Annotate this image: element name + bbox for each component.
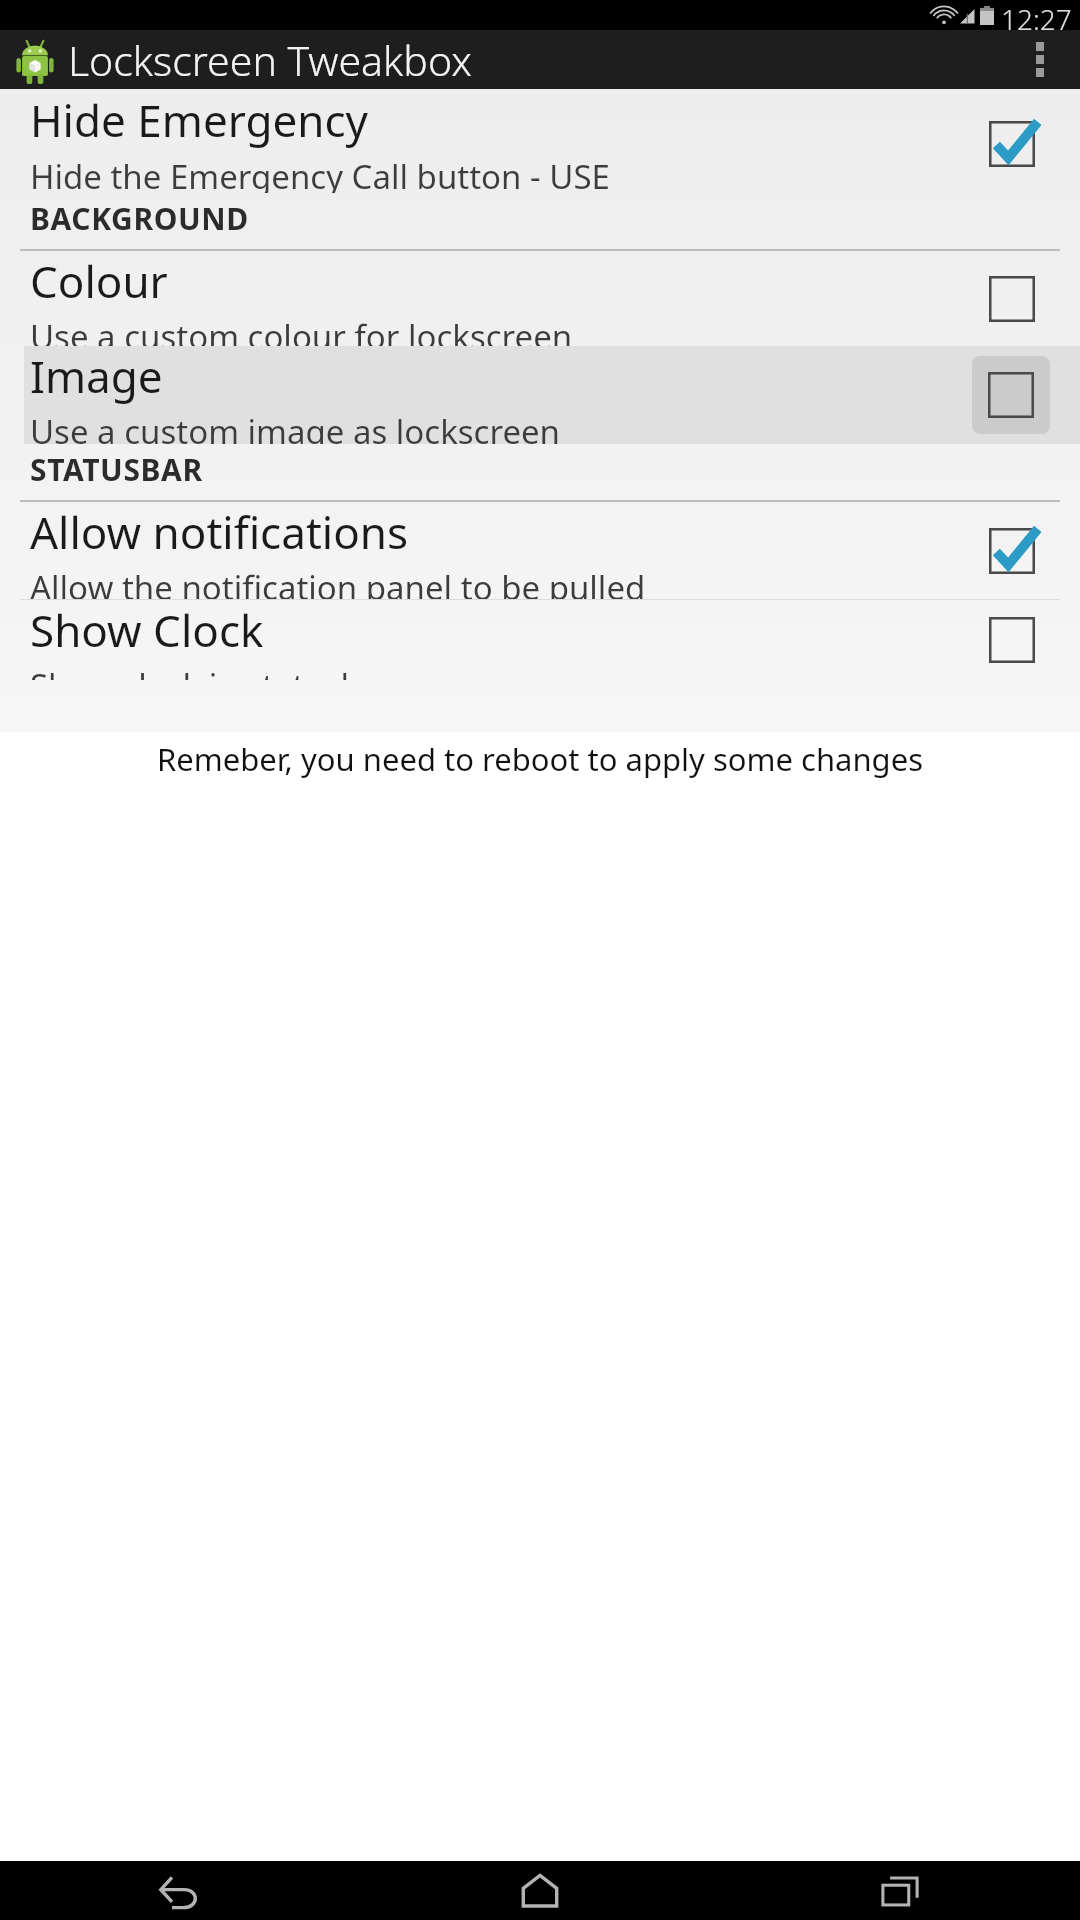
staticText: 12:27	[1001, 0, 1072, 30]
staticText: Use a custom image as lockscreen backgro…	[30, 409, 561, 444]
staticText: Show Clock	[30, 600, 264, 660]
button[interactable]: Image	[24, 346, 1080, 444]
staticText: Image	[30, 346, 163, 406]
staticText: Allow the notification panel to be pulle…	[30, 565, 646, 599]
button[interactable]: Show Clock	[0, 600, 1080, 680]
staticText: Use a custom colour for lockscreen backg…	[30, 314, 573, 346]
button[interactable]: Allow notifications	[0, 502, 1080, 599]
button[interactable]: Home	[360, 1861, 720, 1920]
staticText: Lockscreen Tweakbox	[68, 32, 472, 88]
staticText: BACKGROUND	[30, 198, 249, 239]
button[interactable]: Recent apps	[720, 1861, 1080, 1920]
button[interactable]: Hide Emergency toggle	[974, 106, 1050, 182]
button[interactable]: Image toggle	[972, 356, 1050, 434]
button[interactable]: Allow notifications toggle	[974, 513, 1050, 589]
staticText: Hide Emergency	[30, 90, 369, 150]
button[interactable]: Colour toggle	[974, 261, 1050, 337]
button[interactable]: Show Clock toggle	[974, 602, 1050, 678]
button[interactable]: Hide Emergency	[0, 89, 1080, 193]
staticText: STATUSBAR	[30, 449, 203, 490]
button[interactable]: Back	[0, 1861, 360, 1920]
staticText: Allow notifications	[30, 502, 409, 562]
staticText: Hide the Emergency Call button - USE WIT…	[30, 154, 610, 193]
button[interactable]: Colour	[0, 251, 1080, 346]
staticText: Colour	[30, 251, 168, 311]
staticText: Remeber, you need to reboot to apply som…	[12, 738, 1068, 780]
staticText: Show clock in statusbar	[30, 663, 393, 680]
button[interactable]: More options	[1014, 30, 1066, 89]
